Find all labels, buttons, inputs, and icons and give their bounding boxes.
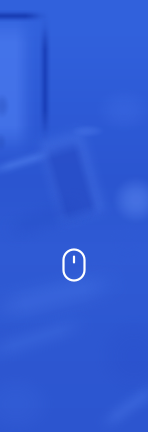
button[interactable]: Scroll down bbox=[51, 242, 97, 288]
